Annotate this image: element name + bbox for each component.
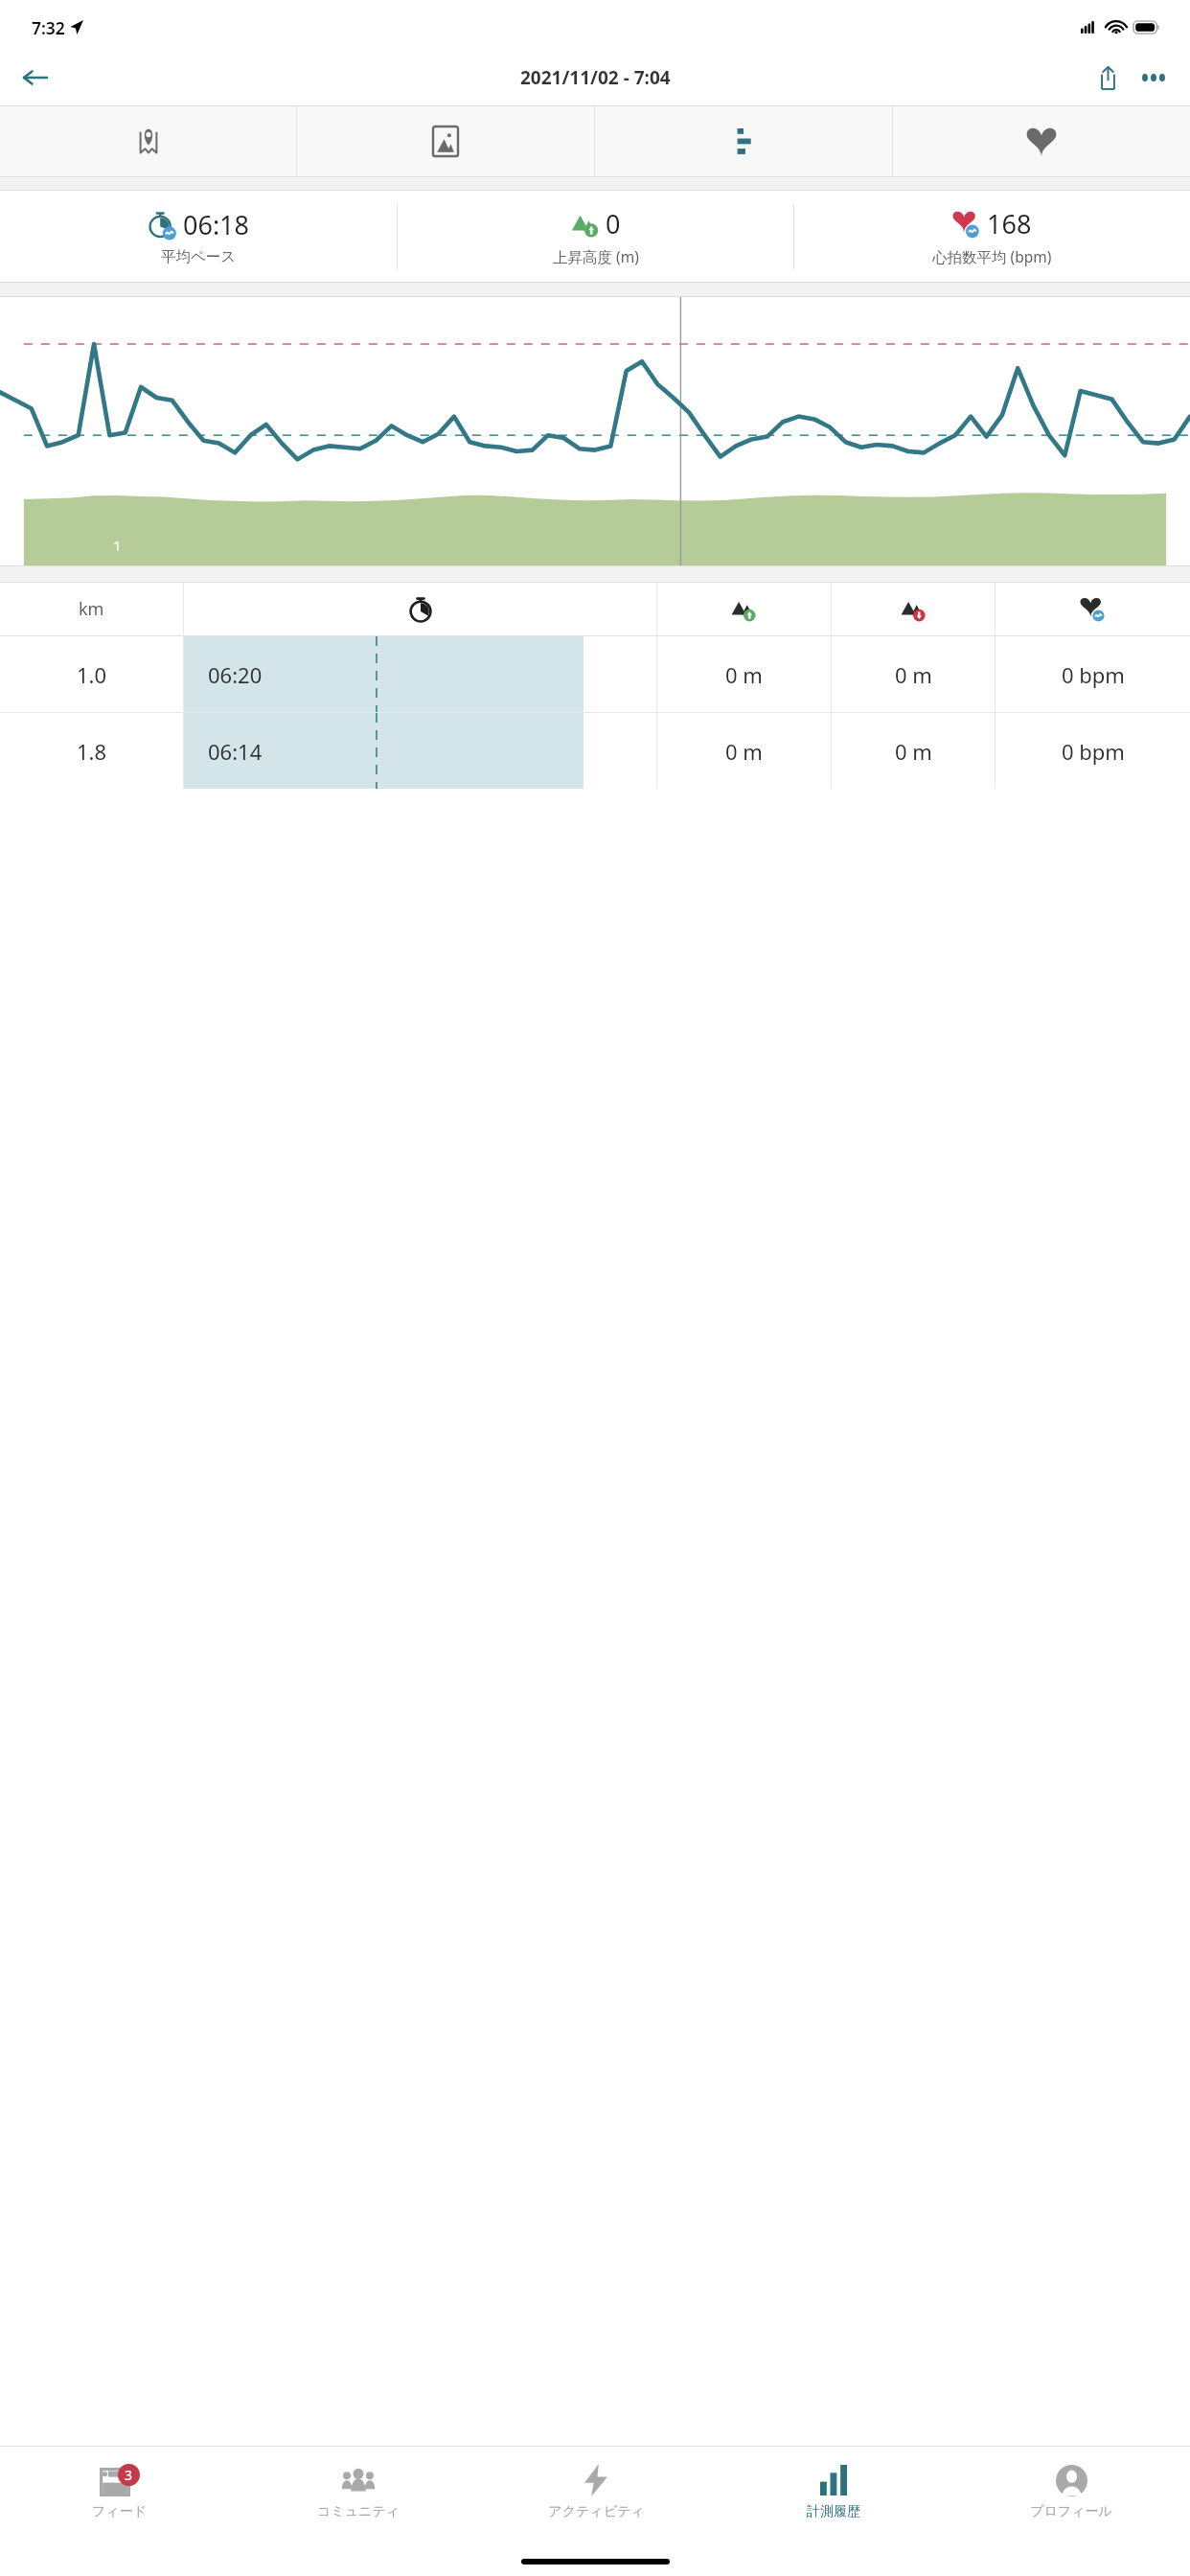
staticText: コミュニティ: [317, 2503, 400, 2520]
staticText: 06:20: [208, 660, 263, 689]
staticText: 7:32: [32, 16, 65, 39]
button[interactable]: Photos: [297, 106, 594, 176]
staticText: 168: [987, 206, 1032, 241]
staticText: 1.0: [77, 660, 107, 689]
button[interactable]: 計測履歴: [715, 2447, 952, 2536]
staticText: 0 m: [725, 660, 763, 689]
staticText: 1.8: [77, 737, 107, 766]
staticText: 0 bpm: [1062, 737, 1125, 766]
staticText: 平均ペース: [161, 247, 237, 266]
button[interactable]: 1.0: [0, 636, 1190, 712]
staticText: 0 m: [725, 737, 763, 766]
staticText: 0 m: [895, 660, 932, 689]
button[interactable]: 168: [794, 191, 1190, 282]
staticText: 0 m: [895, 737, 932, 766]
button[interactable]: 0: [398, 191, 793, 282]
button[interactable]: 3: [0, 2447, 239, 2536]
staticText: フィード: [92, 2503, 147, 2520]
staticText: 06:14: [208, 737, 263, 766]
button[interactable]: More options: [1131, 55, 1177, 101]
staticText: 3: [125, 2466, 133, 2484]
button[interactable]: アクティビティ: [477, 2447, 715, 2536]
staticText: 2021/11/02 - 7:04: [520, 65, 671, 90]
button[interactable]: Map: [0, 106, 296, 176]
button[interactable]: Splits: [595, 106, 892, 176]
staticText: 0 bpm: [1062, 660, 1125, 689]
staticText: 計測履歴: [807, 2503, 860, 2520]
button[interactable]: Back: [10, 53, 59, 103]
button[interactable]: 1.8: [0, 713, 1190, 789]
button[interactable]: プロフィール: [952, 2447, 1190, 2536]
staticText: 0: [606, 206, 621, 241]
staticText: 上昇高度 (m): [553, 246, 639, 266]
staticText: アクティビティ: [548, 2503, 645, 2520]
button[interactable]: Share: [1085, 55, 1131, 101]
staticText: 心拍数平均 (bpm): [932, 246, 1052, 266]
staticText: km: [79, 597, 104, 621]
staticText: 06:18: [183, 207, 250, 242]
staticText: 1: [113, 536, 122, 555]
button[interactable]: 06:18: [0, 191, 397, 282]
button[interactable]: Heart rate: [893, 106, 1190, 176]
button[interactable]: コミュニティ: [239, 2447, 477, 2536]
staticText: プロフィール: [1030, 2503, 1112, 2520]
